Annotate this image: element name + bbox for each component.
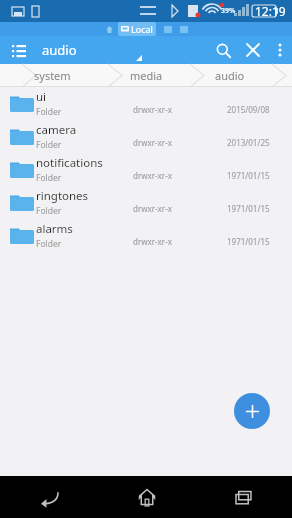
button[interactable]: system	[0, 64, 104, 87]
staticText: 12:19	[255, 3, 286, 19]
button[interactable]: Search	[208, 36, 238, 64]
staticText: Folder	[36, 238, 62, 250]
button[interactable]: Close	[238, 36, 268, 64]
button[interactable]: alarms	[0, 219, 292, 252]
button[interactable]: media	[104, 64, 188, 87]
staticText: 2013/01/25	[227, 137, 270, 148]
button[interactable]: Add	[234, 393, 270, 429]
button[interactable]: More options	[268, 36, 292, 64]
button[interactable]: audio	[188, 64, 272, 87]
staticText: 39%	[221, 6, 236, 16]
staticText: system	[34, 68, 71, 83]
staticText: camera	[36, 122, 77, 138]
staticText: Folder	[36, 106, 62, 118]
staticText: media	[130, 68, 163, 83]
staticText: Folder	[36, 139, 62, 151]
staticText: 2015/09/08	[227, 104, 270, 115]
staticText: alarms	[36, 221, 73, 237]
button[interactable]: ringtones	[0, 186, 292, 219]
staticText: drwxr-xr-x	[133, 137, 172, 148]
staticText: audio	[215, 68, 245, 83]
button[interactable]: Menu	[8, 39, 30, 61]
staticText: drwxr-xr-x	[133, 236, 172, 247]
button[interactable]: ui	[0, 87, 292, 120]
button[interactable]: Back	[0, 476, 98, 518]
button[interactable]: Home	[98, 476, 195, 518]
button[interactable]: Cloud	[176, 22, 192, 36]
staticText: notifications	[36, 155, 103, 171]
staticText: Folder	[36, 172, 62, 184]
staticText: ui	[36, 89, 47, 105]
staticText: drwxr-xr-x	[133, 104, 172, 115]
button[interactable]: Recents	[195, 476, 292, 518]
button[interactable]: notifications	[0, 153, 292, 186]
staticText: drwxr-xr-x	[133, 203, 172, 214]
button[interactable]: Home	[100, 22, 118, 36]
staticText: 1971/01/15	[227, 203, 270, 214]
button[interactable]: Local	[118, 22, 156, 36]
staticText: ringtones	[36, 188, 89, 204]
staticText: drwxr-xr-x	[133, 170, 172, 181]
button[interactable]: camera	[0, 120, 292, 153]
staticText: 1971/01/15	[227, 236, 270, 247]
staticText: audio	[42, 41, 77, 59]
button[interactable]: Network	[160, 22, 176, 36]
staticText: 1971/01/15	[227, 170, 270, 181]
staticText: Folder	[36, 205, 62, 217]
staticText: Local	[131, 23, 153, 35]
